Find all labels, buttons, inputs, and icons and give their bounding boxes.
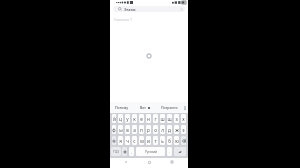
staticText: р [147, 127, 150, 133]
staticText: т [154, 138, 157, 144]
button[interactable]: Home [142, 158, 156, 166]
button[interactable]: ы [118, 125, 123, 134]
staticText: ь [161, 138, 164, 144]
button[interactable]: н [146, 114, 151, 123]
staticText: а [133, 127, 136, 133]
button[interactable]: ю [174, 136, 179, 145]
button[interactable]: Enter [174, 147, 186, 156]
button[interactable]: Backspace [181, 136, 186, 145]
button[interactable]: ш [160, 114, 165, 123]
staticText: д [168, 127, 171, 133]
button[interactable]: щ [167, 114, 172, 123]
button[interactable]: Shift [112, 136, 116, 145]
staticText: о [154, 127, 157, 133]
button[interactable]: р [146, 125, 151, 134]
button[interactable]: ч [125, 136, 130, 145]
button[interactable]: п [139, 125, 144, 134]
button[interactable]: Потому [110, 102, 133, 113]
button[interactable]: к [132, 114, 137, 123]
button[interactable]: д [167, 125, 172, 134]
button[interactable]: Вот [133, 102, 157, 113]
button[interactable]: г [153, 114, 158, 123]
staticText: н [147, 116, 150, 122]
staticText: . [169, 150, 170, 154]
staticText: л [161, 127, 164, 133]
staticText: , [131, 150, 132, 154]
staticText: щ [167, 116, 172, 122]
button[interactable]: я [118, 136, 123, 145]
staticText: к [133, 116, 136, 122]
button[interactable]: Русский [136, 147, 165, 156]
button[interactable]: т [153, 136, 158, 145]
staticText: ю [175, 138, 179, 144]
staticText: ш [160, 116, 165, 122]
button[interactable]: й [112, 114, 116, 123]
button[interactable]: о [153, 125, 158, 134]
staticText: ф [112, 127, 116, 133]
staticText: й [113, 116, 116, 122]
button[interactable]: ?123 [111, 147, 121, 156]
staticText: Русский [145, 150, 157, 154]
button[interactable]: Экзем [113, 6, 185, 12]
staticText: ы [119, 127, 123, 133]
staticText: Потрясно [161, 105, 178, 110]
button[interactable]: л [160, 125, 165, 134]
button[interactable]: х [181, 114, 186, 123]
staticText: Вот [140, 105, 147, 110]
staticText: м [140, 138, 144, 144]
staticText: п [140, 127, 143, 133]
staticText: Симптом 1 [114, 17, 132, 22]
button[interactable]: з [174, 114, 179, 123]
staticText: в [126, 127, 129, 133]
button[interactable]: . [167, 147, 172, 156]
button[interactable]: Back [119, 158, 133, 166]
button[interactable]: More suggestions [181, 102, 188, 113]
button[interactable]: ь [160, 136, 165, 145]
staticText: г [154, 116, 157, 122]
staticText: и [147, 138, 150, 144]
staticText: ч [126, 138, 129, 144]
button[interactable]: , [129, 147, 134, 156]
staticText: ж [175, 127, 179, 133]
button[interactable]: ж [174, 125, 179, 134]
button[interactable]: в [125, 125, 130, 134]
staticText: у [126, 116, 129, 122]
button[interactable]: у [125, 114, 130, 123]
staticText: Потому [115, 105, 129, 110]
button[interactable]: а [132, 125, 137, 134]
staticText: Экзем [124, 7, 136, 12]
staticText: ц [119, 116, 122, 122]
staticText: я [119, 138, 122, 144]
staticText: х [182, 116, 185, 122]
button[interactable]: м [139, 136, 144, 145]
staticText: э [182, 127, 185, 133]
staticText: б [168, 138, 171, 144]
button[interactable]: Потрясно [157, 102, 181, 113]
staticText: с [133, 138, 136, 144]
button[interactable]: е [139, 114, 144, 123]
button[interactable]: ц [118, 114, 123, 123]
button[interactable]: б [167, 136, 172, 145]
button[interactable]: ф [112, 125, 116, 134]
button[interactable]: э [181, 125, 186, 134]
staticText: з [175, 116, 178, 122]
staticText: ?123 [113, 150, 119, 154]
button[interactable]: и [146, 136, 151, 145]
staticText: е [140, 116, 143, 122]
button[interactable]: с [132, 136, 137, 145]
button[interactable]: Emoji [122, 147, 127, 156]
button[interactable]: Recents [165, 158, 179, 166]
